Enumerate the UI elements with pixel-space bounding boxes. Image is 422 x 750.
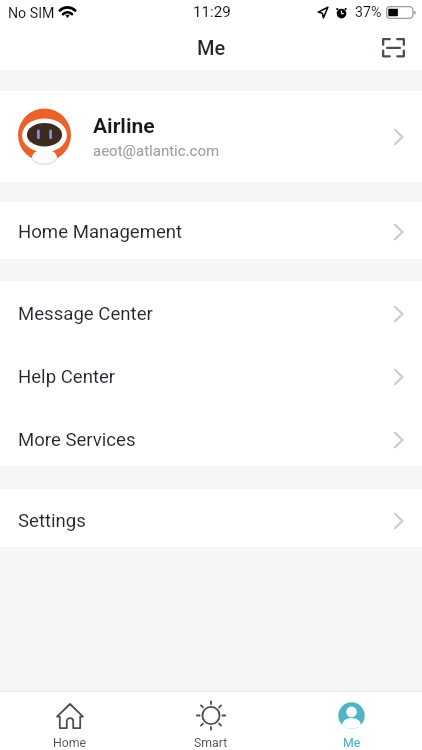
staticText: Me (343, 736, 361, 750)
staticText: Settings (18, 510, 389, 532)
staticText: 37% (355, 4, 382, 21)
button[interactable]: Settings (0, 489, 422, 547)
button[interactable]: Help Center (0, 344, 422, 407)
button[interactable]: More Services (0, 407, 422, 466)
staticText: Smart (194, 736, 228, 750)
staticText: aeot@atlantic.com (93, 142, 220, 160)
staticText: More Services (18, 429, 389, 451)
button[interactable]: Airline (0, 91, 422, 182)
staticText: Home (53, 736, 87, 750)
staticText: Me (197, 36, 226, 59)
button[interactable]: Message Center (0, 281, 422, 344)
staticText: Airline (93, 114, 155, 139)
staticText: Help Center (18, 366, 389, 388)
button[interactable]: Home Management (0, 202, 422, 259)
staticText: Home Management (18, 221, 389, 243)
staticText: Message Center (18, 303, 389, 325)
button[interactable]: Me (281, 691, 422, 750)
staticText: No SIM (8, 5, 55, 22)
staticText: 11:29 (193, 3, 231, 21)
button[interactable]: Scan QR code (374, 28, 413, 67)
button[interactable]: Smart (140, 691, 281, 750)
button[interactable]: Home (0, 691, 140, 750)
